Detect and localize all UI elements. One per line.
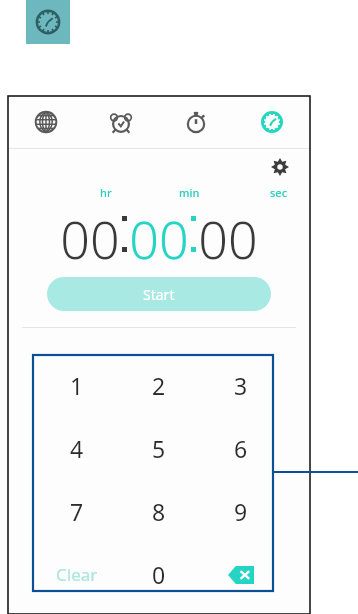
- button[interactable]: 9: [200, 480, 282, 543]
- button[interactable]: Alarm: [83, 96, 158, 148]
- staticText: Start: [143, 285, 175, 304]
- staticText: hr: [100, 185, 112, 200]
- staticText: 7: [70, 496, 84, 527]
- staticText: 5: [152, 433, 166, 464]
- staticText: 00: [129, 203, 189, 265]
- button[interactable]: Timer: [234, 96, 310, 148]
- staticText: 2: [152, 370, 166, 401]
- button[interactable]: 8: [118, 480, 200, 543]
- button[interactable]: 0: [118, 543, 200, 606]
- button[interactable]: Clear: [36, 543, 118, 606]
- button[interactable]: Start: [47, 277, 271, 311]
- button[interactable]: 2: [118, 354, 200, 417]
- button[interactable]: 4: [36, 417, 118, 480]
- staticText: 3: [234, 370, 248, 401]
- staticText: 8: [152, 496, 166, 527]
- button[interactable]: Settings: [266, 153, 294, 181]
- staticText: 6: [234, 433, 248, 464]
- button[interactable]: 3: [200, 354, 282, 417]
- staticText: 00: [198, 203, 258, 265]
- button[interactable]: 1: [36, 354, 118, 417]
- button[interactable]: Backspace: [200, 543, 282, 606]
- button[interactable]: 7: [36, 480, 118, 543]
- staticText: 00: [60, 203, 120, 265]
- staticText: min: [179, 185, 200, 200]
- button[interactable]: 6: [200, 417, 282, 480]
- staticText: 9: [234, 496, 248, 527]
- button[interactable]: 5: [118, 417, 200, 480]
- staticText: 1: [70, 370, 84, 401]
- staticText: 4: [70, 433, 84, 464]
- button[interactable]: Stopwatch: [158, 96, 234, 148]
- staticText: Clear: [56, 563, 98, 586]
- button[interactable]: World clock: [8, 96, 83, 148]
- staticText: sec: [270, 185, 288, 200]
- button[interactable]: Clock app icon: [26, 0, 70, 44]
- staticText: 0: [152, 559, 166, 590]
